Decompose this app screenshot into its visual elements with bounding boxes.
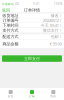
- staticText: 商品金额: [2, 41, 18, 46]
- staticText: ¥ 99.00: [49, 41, 61, 46]
- staticText: 下单时间: [2, 23, 18, 28]
- button[interactable]: 支付方式: [0, 28, 64, 33]
- button[interactable]: 首页: [0, 88, 21, 100]
- staticText: 订单详情: [24, 8, 40, 13]
- staticText: 修改: [51, 13, 59, 18]
- staticText: 配送方式: [2, 34, 18, 39]
- staticText: 今天 09:41: [41, 23, 59, 28]
- button[interactable]: 配送方式: [0, 34, 64, 39]
- button[interactable]: 下单时间: [0, 23, 64, 28]
- button[interactable]: 我的: [43, 88, 64, 100]
- button[interactable]: 返回: [0, 8, 12, 13]
- staticText: 微信支付: [43, 28, 59, 33]
- button[interactable]: 收货地址: [0, 13, 64, 18]
- staticText: 首页: [8, 95, 14, 98]
- button[interactable]: 立即支付: [2, 55, 62, 62]
- staticText: 中国移动: [2, 2, 14, 6]
- staticText: 返回: [2, 8, 10, 13]
- staticText: 4G: [14, 2, 19, 6]
- staticText: 订单: [29, 95, 35, 98]
- button[interactable]: 订单编号: [0, 18, 64, 23]
- staticText: 包邮: [51, 34, 59, 39]
- staticText: 立即支付: [24, 56, 40, 61]
- staticText: 我的: [50, 95, 56, 98]
- staticText: 9:41: [33, 2, 40, 6]
- button[interactable]: 订单: [21, 88, 43, 100]
- staticText: 100%: [54, 2, 62, 6]
- button[interactable]: 商品金额: [0, 39, 64, 48]
- staticText: 20240512: [43, 18, 59, 23]
- staticText: 支付方式: [2, 28, 18, 33]
- staticText: 收货地址: [2, 13, 18, 18]
- staticText: 订单编号: [2, 18, 18, 23]
